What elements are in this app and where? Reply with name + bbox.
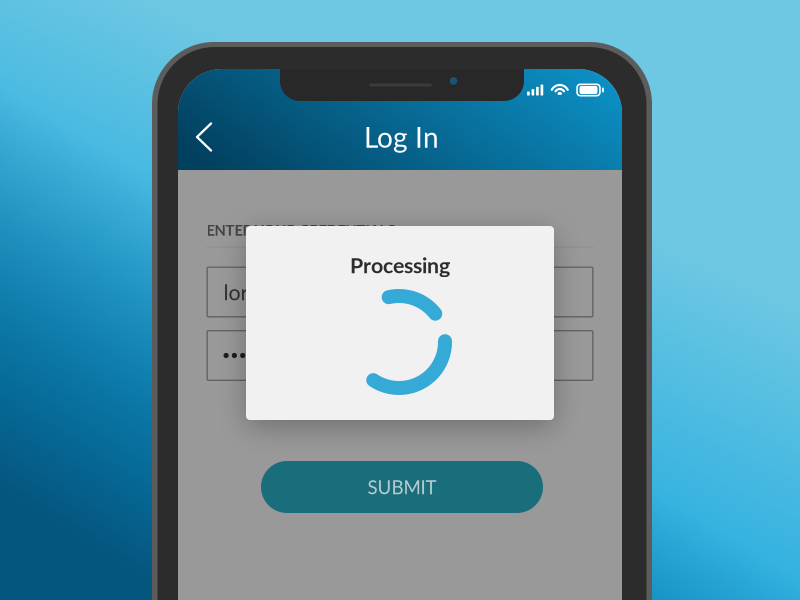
button[interactable]: SUBMIT [261, 461, 543, 513]
staticText: Processing [350, 252, 450, 278]
staticText: ENTER YOUR CREDENTIALS [206, 221, 395, 239]
staticText: SUBMIT [367, 476, 436, 498]
staticText: lorem ipsum [223, 279, 337, 305]
staticText: Log In [364, 120, 439, 154]
button[interactable]: Back [184, 110, 224, 163]
